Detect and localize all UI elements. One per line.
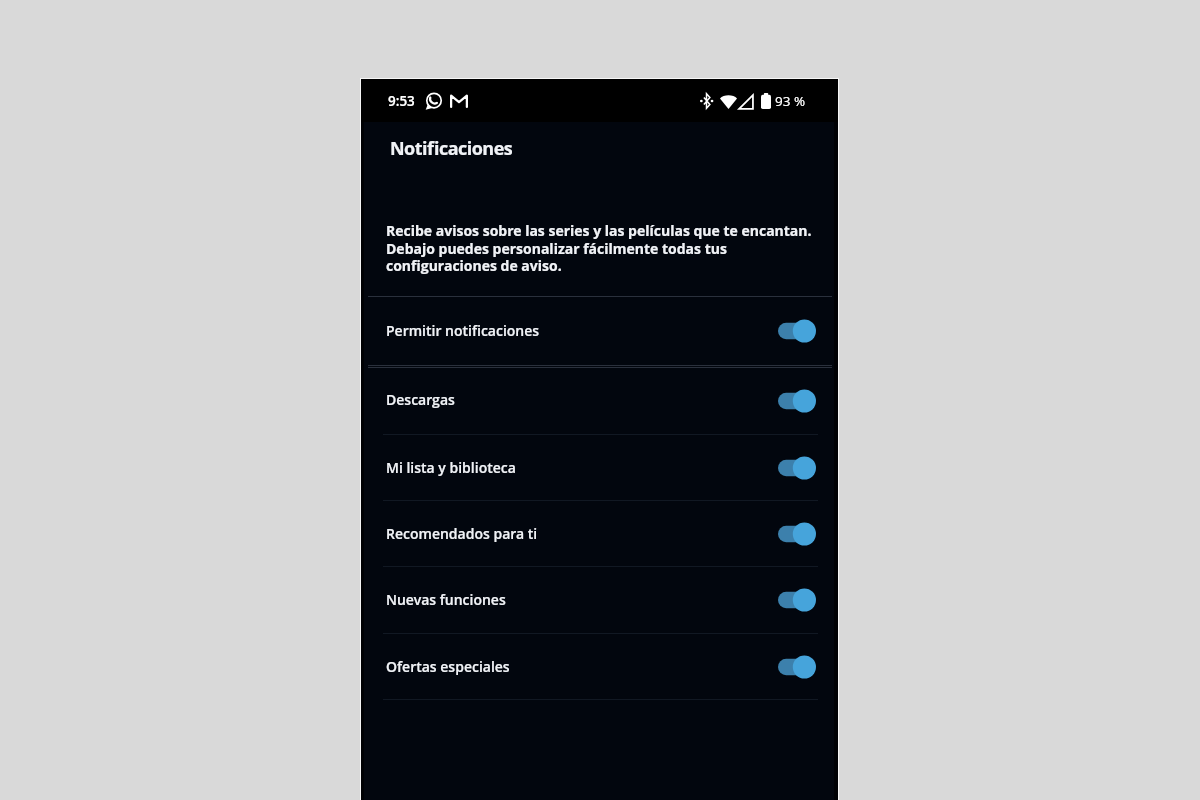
staticText: Nuevas funciones — [386, 590, 506, 609]
staticText: Ofertas especiales — [386, 657, 510, 676]
other: Bluetooth — [700, 93, 713, 109]
other: Batería — [761, 93, 771, 109]
staticText: Notificaciones — [390, 136, 513, 161]
button[interactable]: Activado — [778, 522, 816, 546]
button[interactable]: Ofertas especiales — [361, 634, 838, 700]
button[interactable]: Recomendados para ti — [361, 501, 838, 567]
staticText: Recomendados para ti — [386, 524, 538, 543]
staticText: Descargas — [386, 390, 455, 409]
other: Wi-Fi — [720, 94, 737, 109]
button[interactable]: Permitir notificaciones — [361, 297, 838, 366]
other: Señal — [738, 94, 754, 110]
staticText: Permitir notificaciones — [386, 321, 540, 340]
button[interactable]: Activado — [778, 456, 816, 480]
button[interactable]: Activado — [778, 655, 816, 679]
staticText: Recibe avisos sobre las series y las pel… — [386, 221, 822, 275]
other: Gmail — [450, 94, 468, 108]
button[interactable]: Mi lista y biblioteca — [361, 435, 838, 501]
button[interactable]: Activado — [778, 319, 816, 343]
other: WhatsApp — [425, 92, 442, 110]
staticText: 93 % — [775, 92, 806, 110]
button[interactable]: Nuevas funciones — [361, 567, 838, 634]
staticText: Mi lista y biblioteca — [386, 458, 516, 477]
button[interactable]: Descargas — [361, 367, 838, 434]
button[interactable]: Activado — [778, 588, 816, 612]
staticText: 9:53 — [388, 92, 415, 110]
button[interactable]: Activado — [778, 389, 816, 413]
